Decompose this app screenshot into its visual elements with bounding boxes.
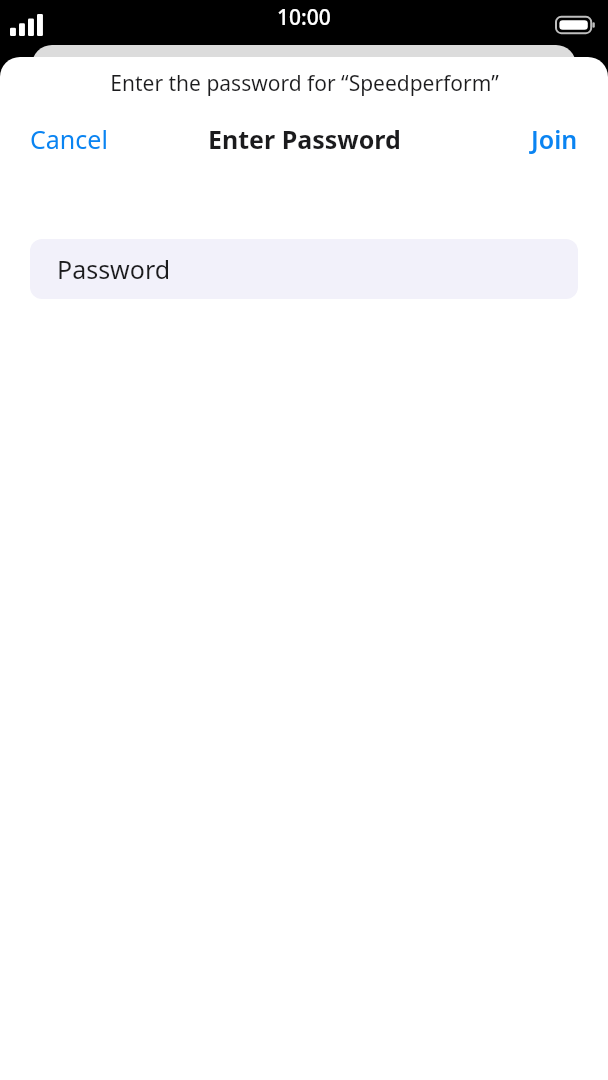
button[interactable]: Cancel bbox=[0, 110, 122, 168]
staticText: Password bbox=[57, 252, 171, 286]
other: Cellular signal bbox=[10, 14, 46, 36]
staticText: Join bbox=[531, 122, 578, 156]
button[interactable]: Join bbox=[517, 110, 608, 168]
staticText: Enter the password for “Speedperform” bbox=[110, 69, 499, 98]
other: Battery full bbox=[556, 15, 596, 35]
staticText: Cancel bbox=[30, 122, 108, 156]
staticText: 10:00 bbox=[277, 3, 331, 32]
button[interactable]: Password bbox=[30, 239, 578, 299]
staticText: Enter Password bbox=[208, 122, 401, 156]
